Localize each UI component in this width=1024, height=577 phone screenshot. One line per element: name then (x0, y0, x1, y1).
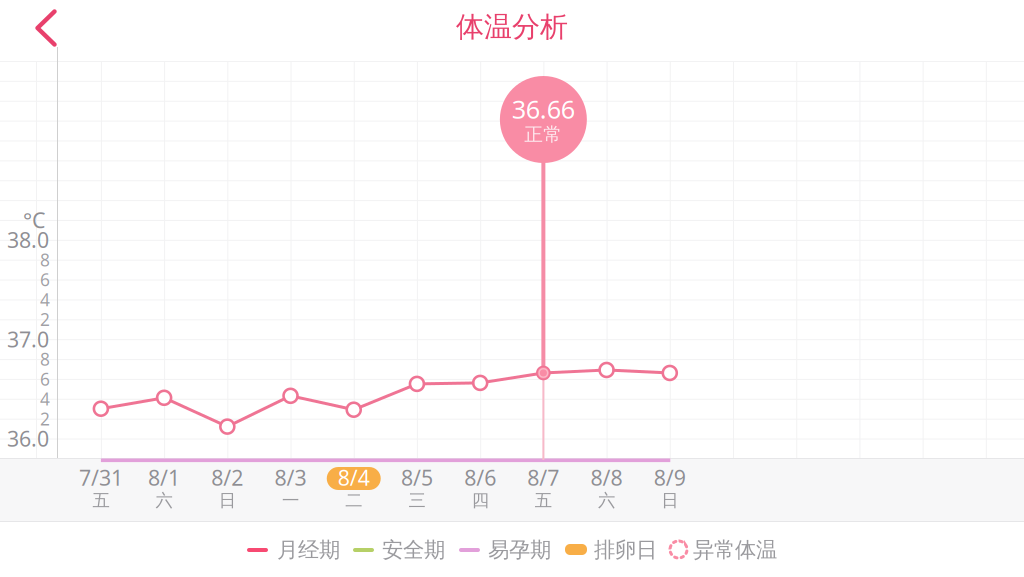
staticText: 2 (40, 308, 50, 331)
staticText: 2 (40, 407, 50, 430)
staticText: 38.0 (7, 226, 49, 254)
button[interactable]: Back (0, 0, 58, 56)
staticText: 7/31 (79, 463, 123, 492)
staticText: 一 (282, 490, 299, 511)
staticText: 8/6 (464, 463, 496, 492)
staticText: 正常 (524, 123, 562, 146)
staticText: 四 (472, 490, 489, 511)
staticText: 8/9 (654, 463, 686, 492)
staticText: 日 (661, 490, 678, 511)
staticText: 五 (92, 490, 109, 511)
staticText: 8 (40, 248, 50, 271)
button[interactable]: 36.66 (0, 0, 87, 87)
staticText: 4 (40, 387, 50, 410)
staticText: °C (23, 206, 45, 234)
staticText: 六 (598, 490, 615, 511)
staticText: 36.0 (7, 424, 49, 453)
button[interactable]: 易孕期 (0, 0, 120, 26)
staticText: 排卵日 (594, 537, 657, 563)
staticText: 体温分析 (456, 10, 568, 44)
staticText: 异常体温 (693, 537, 777, 563)
button[interactable]: 异常体温 (0, 0, 120, 26)
staticText: 五 (535, 490, 552, 511)
staticText: 易孕期 (488, 537, 551, 563)
staticText: 8/1 (148, 463, 180, 492)
staticText: 8/7 (527, 463, 559, 492)
staticText: 6 (40, 268, 50, 291)
staticText: 8/8 (591, 463, 623, 492)
staticText: 日 (219, 490, 236, 511)
staticText: 8/4 (338, 463, 370, 492)
button[interactable]: 排卵日 (0, 0, 120, 26)
button[interactable]: 安全期 (0, 0, 120, 26)
staticText: 二 (345, 490, 362, 511)
staticText: 8/5 (401, 463, 433, 492)
staticText: 月经期 (277, 537, 340, 563)
button[interactable]: 月经期 (0, 0, 120, 26)
staticText: 36.66 (512, 92, 575, 126)
staticText: 37.0 (7, 325, 49, 353)
staticText: 8/3 (274, 463, 306, 492)
staticText: 4 (40, 288, 50, 311)
staticText: 三 (408, 490, 425, 511)
staticText: 8 (40, 347, 50, 370)
staticText: 6 (40, 367, 50, 390)
staticText: 六 (156, 490, 173, 511)
staticText: 安全期 (382, 537, 445, 563)
staticText: 8/2 (211, 463, 243, 492)
